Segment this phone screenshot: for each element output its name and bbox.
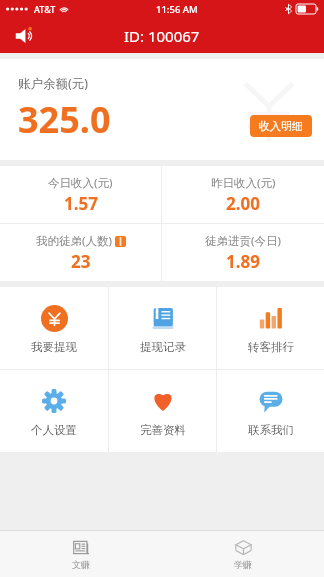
button[interactable]: Announcements xyxy=(10,21,40,51)
staticText: 1.89 xyxy=(226,250,260,273)
staticText: 今日收入(元) xyxy=(48,175,113,191)
button[interactable]: 提现记录 xyxy=(109,287,216,369)
staticText: 完善资料 xyxy=(140,423,186,437)
staticText: 2.00 xyxy=(226,192,260,215)
staticText: 收入明细 xyxy=(259,119,303,133)
staticText: 23 xyxy=(71,250,91,273)
staticText: 学赚 xyxy=(234,559,252,570)
staticText: 徒弟进贡(今日) xyxy=(205,233,281,249)
button[interactable]: 收入明细 xyxy=(250,115,312,137)
button[interactable]: 个人设置 xyxy=(0,370,108,452)
staticText: 我的徒弟(人数) xyxy=(36,233,112,249)
staticText: 文赚 xyxy=(72,559,90,570)
button[interactable]: 完善资料 xyxy=(109,370,216,452)
staticText: 昨日收入(元) xyxy=(211,175,276,191)
staticText: 账户余额(元) xyxy=(18,75,89,92)
button[interactable]: 今日收入(元) xyxy=(0,166,161,223)
button[interactable]: 我要提现 xyxy=(0,287,108,369)
button[interactable]: 文赚 xyxy=(0,531,162,577)
staticText: 1.57 xyxy=(64,192,98,215)
staticText: 个人设置 xyxy=(31,423,77,437)
staticText: 325.0 xyxy=(18,95,111,144)
button[interactable]: 联系我们 xyxy=(217,370,324,452)
button[interactable]: 转客排行 xyxy=(217,287,324,369)
staticText: 联系我们 xyxy=(248,423,294,437)
staticText: 提现记录 xyxy=(140,340,186,354)
button[interactable]: 我的徒弟(人数) xyxy=(0,224,161,281)
staticText: ID: 100067 xyxy=(124,26,200,46)
staticText: AT&T xyxy=(34,3,56,15)
button[interactable]: 昨日收入(元) xyxy=(162,166,324,223)
staticText: 我要提现 xyxy=(31,340,77,354)
button[interactable]: 徒弟进贡(今日) xyxy=(162,224,324,281)
button[interactable]: 学赚 xyxy=(162,531,324,577)
staticText: 11:56 AM xyxy=(156,3,198,16)
staticText: 转客排行 xyxy=(248,340,294,354)
